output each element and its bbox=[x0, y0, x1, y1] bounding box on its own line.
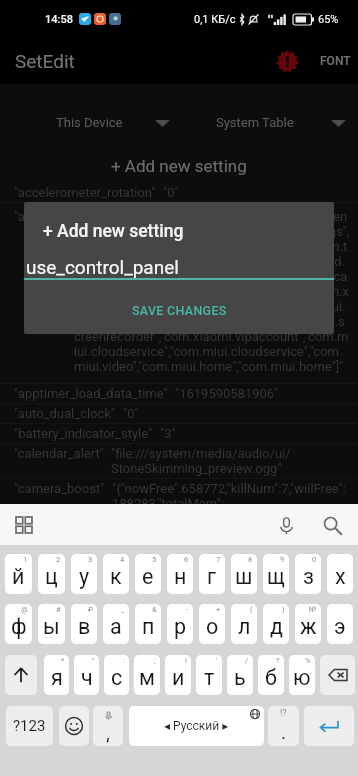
button[interactable]: и bbox=[165, 655, 191, 695]
button[interactable]: , bbox=[93, 706, 123, 746]
button[interactable]: FONT bbox=[320, 48, 351, 74]
button[interactable]: л bbox=[231, 604, 257, 644]
button[interactable]: Keyboard modes bbox=[8, 509, 40, 541]
button[interactable]: р bbox=[167, 604, 193, 644]
button[interactable]: ю bbox=[289, 655, 315, 695]
staticText: + bbox=[216, 605, 221, 614]
staticText: н bbox=[174, 564, 187, 589]
button[interactable]: "app_list" bbox=[0, 203, 358, 383]
staticText: "0" bbox=[163, 185, 179, 200]
staticText: "{"nowFree":658772,"killNum":7,"willFree… bbox=[112, 481, 350, 511]
staticText: : bbox=[123, 656, 125, 665]
staticText: 0,1 КБ/c bbox=[194, 13, 236, 26]
staticText: System Table bbox=[216, 115, 294, 130]
staticText: 7 bbox=[216, 555, 221, 564]
staticText: ю bbox=[293, 665, 311, 690]
button[interactable]: ш bbox=[231, 554, 257, 594]
staticText: ф bbox=[11, 614, 27, 639]
button[interactable]: е bbox=[135, 554, 161, 594]
staticText: 0 bbox=[312, 555, 317, 564]
button[interactable]: Shift bbox=[5, 655, 37, 695]
button[interactable]: ч bbox=[74, 655, 99, 695]
staticText: 5 bbox=[152, 555, 157, 564]
staticText: ) bbox=[282, 605, 285, 614]
staticText: р bbox=[174, 614, 187, 639]
staticText: г bbox=[207, 564, 217, 589]
staticText: д bbox=[270, 614, 283, 639]
staticText: "0" bbox=[123, 406, 139, 421]
button[interactable]: Warning bbox=[274, 48, 300, 74]
button[interactable]: д bbox=[263, 604, 289, 644]
button[interactable]: ф bbox=[5, 604, 32, 644]
button[interactable]: с bbox=[104, 655, 129, 695]
staticText: # bbox=[56, 605, 61, 614]
staticText: х bbox=[335, 564, 346, 589]
button[interactable]: Emoji bbox=[59, 706, 89, 746]
staticText: ; bbox=[154, 656, 156, 665]
button[interactable]: п bbox=[135, 604, 161, 644]
staticText: % bbox=[305, 656, 311, 665]
button[interactable]: SAVE CHANGES bbox=[116, 298, 243, 323]
staticText: 8 bbox=[248, 555, 253, 564]
button[interactable]: "auto_dual_clock" bbox=[0, 404, 358, 423]
button[interactable]: System Table bbox=[179, 84, 358, 148]
button[interactable]: н bbox=[167, 554, 193, 594]
staticText: ₽ bbox=[88, 605, 93, 614]
button[interactable]: "camera_boost" bbox=[0, 479, 358, 513]
staticText: ь bbox=[234, 665, 246, 690]
button[interactable]: к bbox=[103, 554, 129, 594]
staticText: _ bbox=[121, 605, 125, 614]
staticText: ( bbox=[250, 605, 253, 614]
staticText: 2 bbox=[56, 555, 61, 564]
staticText: ш bbox=[235, 564, 253, 589]
button[interactable]: а bbox=[103, 604, 129, 644]
button[interactable]: "calendar_alert" bbox=[0, 444, 358, 478]
button[interactable]: ?123 bbox=[6, 706, 53, 746]
button[interactable]: ◂ Русский ▸ bbox=[129, 706, 264, 746]
staticText: use_control_panel bbox=[26, 256, 179, 278]
button[interactable]: Voice input bbox=[270, 509, 302, 541]
staticText: "apptimer_load_data_time" bbox=[14, 386, 168, 401]
staticText: б bbox=[265, 665, 277, 690]
button[interactable]: щ bbox=[263, 554, 289, 594]
button[interactable]: Search bbox=[316, 509, 348, 541]
button[interactable]: о bbox=[199, 604, 225, 644]
button[interactable]: ы bbox=[38, 604, 65, 644]
button[interactable]: Enter bbox=[304, 706, 354, 746]
staticText: + Add new setting bbox=[111, 156, 247, 176]
staticText: ' bbox=[216, 656, 218, 665]
staticText: "["com.android.systemui","com.miui.secur… bbox=[74, 209, 350, 374]
button[interactable]: б bbox=[258, 655, 284, 695]
staticText: * bbox=[61, 656, 65, 665]
button[interactable]: ь bbox=[227, 655, 253, 695]
button[interactable]: х bbox=[327, 554, 353, 594]
staticText: е bbox=[142, 564, 154, 589]
button[interactable]: "apptimer_load_data_time" bbox=[0, 384, 358, 403]
button[interactable]: з bbox=[295, 554, 321, 594]
button[interactable]: "accelerometer_rotation" bbox=[0, 183, 358, 202]
staticText: "camera_boost" bbox=[14, 481, 105, 496]
button[interactable]: ц bbox=[38, 554, 65, 594]
button[interactable]: г bbox=[199, 554, 225, 594]
button[interactable]: й bbox=[5, 554, 32, 594]
staticText: 14:58 bbox=[45, 13, 73, 26]
button[interactable]: This Device bbox=[0, 84, 179, 148]
staticText: в bbox=[78, 614, 91, 639]
staticText: / bbox=[245, 656, 249, 665]
staticText: 6 bbox=[184, 555, 189, 564]
button[interactable]: "battery_indicator_style" bbox=[0, 424, 358, 443]
staticText: This Device bbox=[56, 115, 123, 130]
button[interactable]: в bbox=[71, 604, 97, 644]
button[interactable]: Backspace bbox=[320, 655, 355, 695]
button[interactable]: э bbox=[327, 604, 353, 644]
button[interactable]: ж bbox=[295, 604, 321, 644]
staticText: , bbox=[106, 722, 110, 744]
button[interactable]: + Add new setting bbox=[0, 148, 358, 183]
staticText: п bbox=[142, 614, 155, 639]
button[interactable]: м bbox=[134, 655, 160, 695]
button[interactable]: я bbox=[44, 655, 69, 695]
staticText: о bbox=[206, 614, 219, 639]
button[interactable]: у bbox=[71, 554, 97, 594]
button[interactable]: . bbox=[268, 706, 299, 746]
button[interactable]: т bbox=[196, 655, 222, 695]
